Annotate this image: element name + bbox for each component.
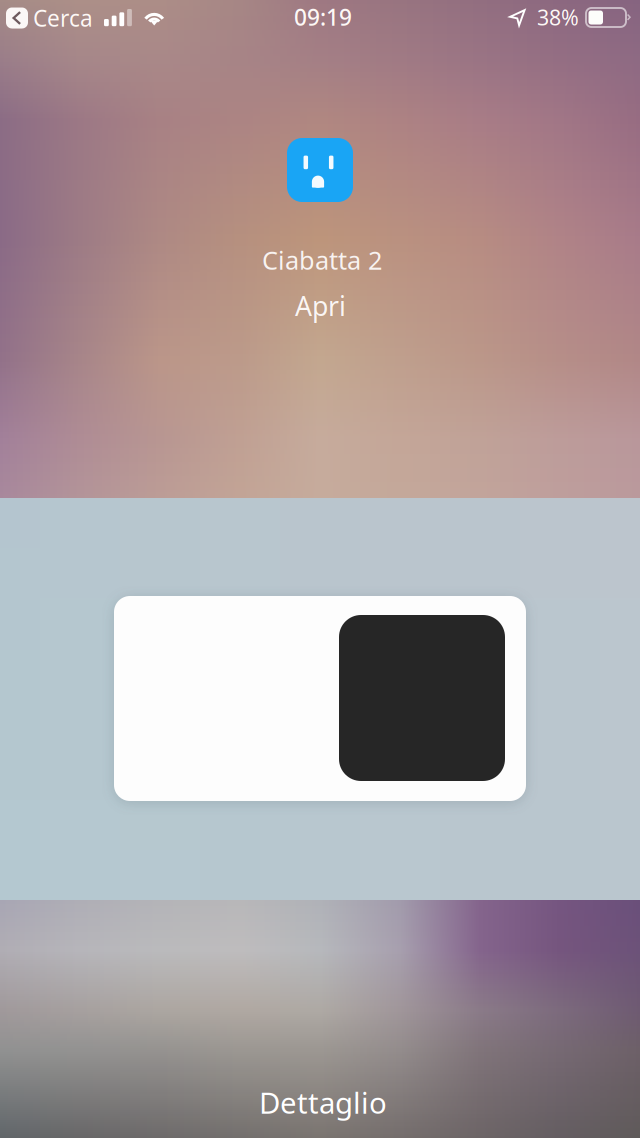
button[interactable]: Apri [295,288,346,323]
staticText: Apri [295,288,346,323]
staticText: Dettaglio [259,1083,387,1122]
staticText: 09:19 [294,2,352,32]
staticText: 38% [537,3,579,31]
button[interactable]: Dettaglio [259,1083,387,1122]
button[interactable]: Indietro a Cerca [6,7,97,29]
staticText: Ciabatta 2 [262,243,382,277]
button[interactable]: Ciabatta 2, attiva [114,596,526,801]
staticText: Cerca [33,3,93,33]
